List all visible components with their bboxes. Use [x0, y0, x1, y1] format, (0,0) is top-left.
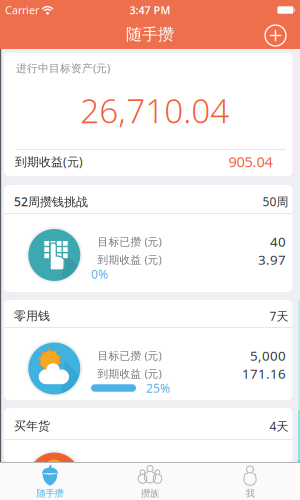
staticText: 26,710.04 — [80, 88, 229, 132]
staticText: 目标已攒 (元) — [97, 234, 161, 249]
staticText: 4天 — [269, 418, 288, 434]
staticText: 随手攒 — [36, 488, 63, 499]
staticText: 25% — [146, 380, 170, 396]
button[interactable]: 我 — [200, 463, 300, 500]
staticText: 攒族 — [141, 488, 159, 499]
staticText: 到期收益(元) — [15, 153, 83, 169]
staticText: 随手攒 — [126, 25, 174, 44]
staticText: 905.04 — [228, 152, 272, 171]
button[interactable]: 随手攒 — [0, 463, 100, 500]
staticText: 目标已攒 (元) — [97, 348, 161, 363]
staticText: 50周 — [262, 193, 288, 209]
staticText: 3.97 — [258, 251, 286, 268]
staticText: 进行中目标资产(元) — [16, 61, 110, 75]
staticText: 0% — [91, 266, 108, 282]
staticText: 171.16 — [242, 365, 286, 382]
staticText: 40 — [270, 233, 286, 250]
button[interactable]: 添加攒钱目标 — [265, 23, 300, 46]
staticText: 买年货 — [14, 419, 50, 433]
staticText: 5,000 — [250, 347, 286, 364]
staticText: 我 — [245, 488, 254, 499]
staticText: 到期收益 (元) — [97, 252, 161, 267]
staticText: 3:47 PM — [129, 3, 170, 17]
button[interactable]: 买年货 — [4, 408, 292, 462]
staticText: 52周攒钱挑战 — [14, 193, 88, 209]
button[interactable]: 零用钱 — [4, 300, 292, 400]
staticText: Carrier — [5, 3, 39, 17]
staticText: 7天 — [269, 308, 288, 324]
staticText: 零用钱 — [14, 309, 50, 323]
button[interactable]: 52周攒钱挑战 — [4, 185, 292, 292]
button[interactable]: 攒族 — [100, 463, 200, 500]
staticText: 到期收益 (元) — [97, 366, 161, 381]
